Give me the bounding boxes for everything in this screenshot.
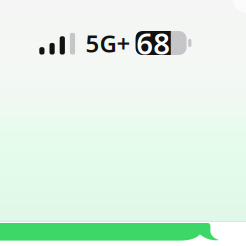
staticText: 68: [136, 23, 170, 62]
staticText: 5G+: [85, 27, 130, 59]
